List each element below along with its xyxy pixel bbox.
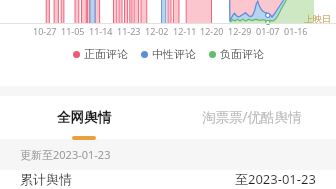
staticText: 12-29: [228, 25, 252, 37]
staticText: 12-20: [200, 25, 224, 37]
staticText: 淘票票/优酷舆情: [202, 108, 302, 126]
staticText: 12-02: [145, 25, 169, 37]
staticText: 全网舆情: [57, 109, 111, 126]
button[interactable]: 全网舆情: [0, 96, 168, 138]
button[interactable]: 正面评论: [73, 47, 128, 61]
staticText: 11-14: [89, 25, 113, 37]
button[interactable]: 淘票票/优酷舆情: [168, 96, 336, 138]
button[interactable]: 中性评论: [141, 47, 196, 61]
staticText: 10-27: [33, 25, 57, 37]
staticText: 累计舆情: [20, 171, 72, 187]
staticText: 负面评论: [220, 47, 264, 61]
staticText: 中性评论: [152, 47, 196, 61]
staticText: 11-23: [117, 25, 141, 37]
staticText: 01-16: [284, 25, 308, 37]
staticText: 12-11: [173, 25, 197, 37]
staticText: 正面评论: [84, 47, 128, 61]
staticText: 01-07: [256, 25, 280, 37]
button[interactable]: 负面评论: [209, 47, 264, 61]
staticText: 至2023-01-23: [235, 170, 316, 188]
staticText: 上映日: [304, 13, 331, 24]
staticText: 11-05: [61, 25, 85, 37]
staticText: 更新至2023-01-23: [20, 147, 111, 162]
